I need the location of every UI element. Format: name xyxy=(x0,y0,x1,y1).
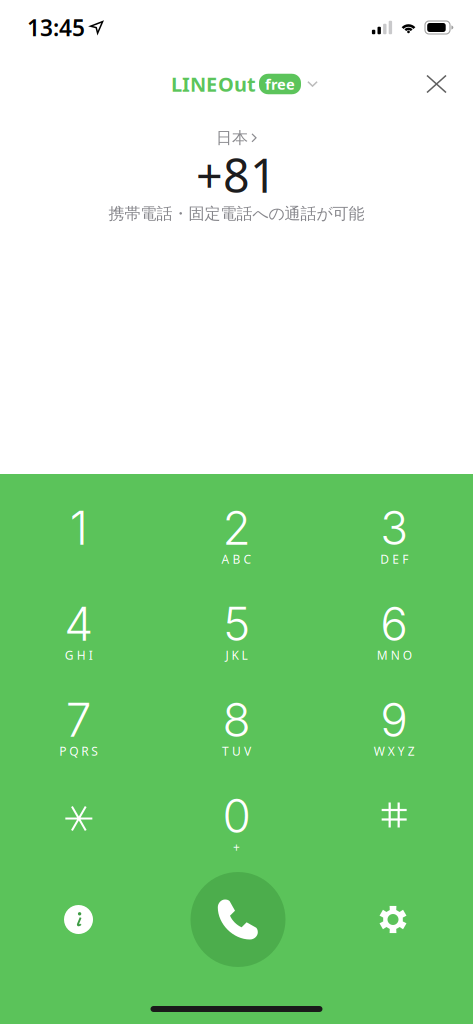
staticText: A B C xyxy=(221,551,251,567)
staticText: 携帯電話・固定電話への通話が可能 xyxy=(108,204,364,223)
staticText: free xyxy=(265,74,295,94)
staticText: 日本 xyxy=(216,128,248,148)
staticText: J K L xyxy=(225,647,247,663)
staticText: 2 xyxy=(222,500,250,556)
button[interactable]: 7 xyxy=(0,666,158,762)
staticText: 3 xyxy=(380,500,408,556)
staticText: D E F xyxy=(380,551,408,567)
button[interactable]: 3 xyxy=(315,474,473,570)
button[interactable]: Pound xyxy=(315,762,473,858)
staticText: LINE xyxy=(171,71,217,97)
staticText: G H I xyxy=(65,647,93,663)
staticText: 4 xyxy=(64,596,93,652)
button[interactable]: 6 xyxy=(315,570,473,666)
staticText: +81 xyxy=(196,144,277,206)
staticText: Out xyxy=(218,71,256,97)
staticText: M N O xyxy=(377,647,412,663)
button[interactable]: 日本 xyxy=(216,128,257,148)
staticText: + xyxy=(233,839,240,855)
staticText: 5 xyxy=(223,596,250,652)
staticText: 8 xyxy=(222,692,250,748)
button[interactable]: 1 xyxy=(0,474,158,570)
staticText: 9 xyxy=(380,692,408,748)
staticText: W X Y Z xyxy=(374,743,415,759)
button[interactable]: Call xyxy=(190,872,285,967)
staticText: T U V xyxy=(222,743,251,759)
staticText: 1 xyxy=(70,500,88,556)
button[interactable]: LINE xyxy=(171,71,302,97)
button[interactable]: 8 xyxy=(158,666,315,762)
button[interactable]: 9 xyxy=(315,666,473,762)
button[interactable]: Close xyxy=(414,62,459,105)
button[interactable]: 2 xyxy=(158,474,315,570)
button[interactable]: 5 xyxy=(158,570,315,666)
button[interactable]: Settings xyxy=(303,872,407,967)
staticText: P Q R S xyxy=(59,743,98,759)
staticText: 6 xyxy=(380,596,408,652)
button[interactable]: Information xyxy=(64,872,168,967)
staticText: 13:45 xyxy=(27,12,85,42)
staticText: 0 xyxy=(222,788,250,844)
staticText: 7 xyxy=(66,692,92,748)
button[interactable]: 4 xyxy=(0,570,158,666)
button[interactable]: Star xyxy=(0,762,158,858)
button[interactable]: 0 xyxy=(158,762,315,858)
